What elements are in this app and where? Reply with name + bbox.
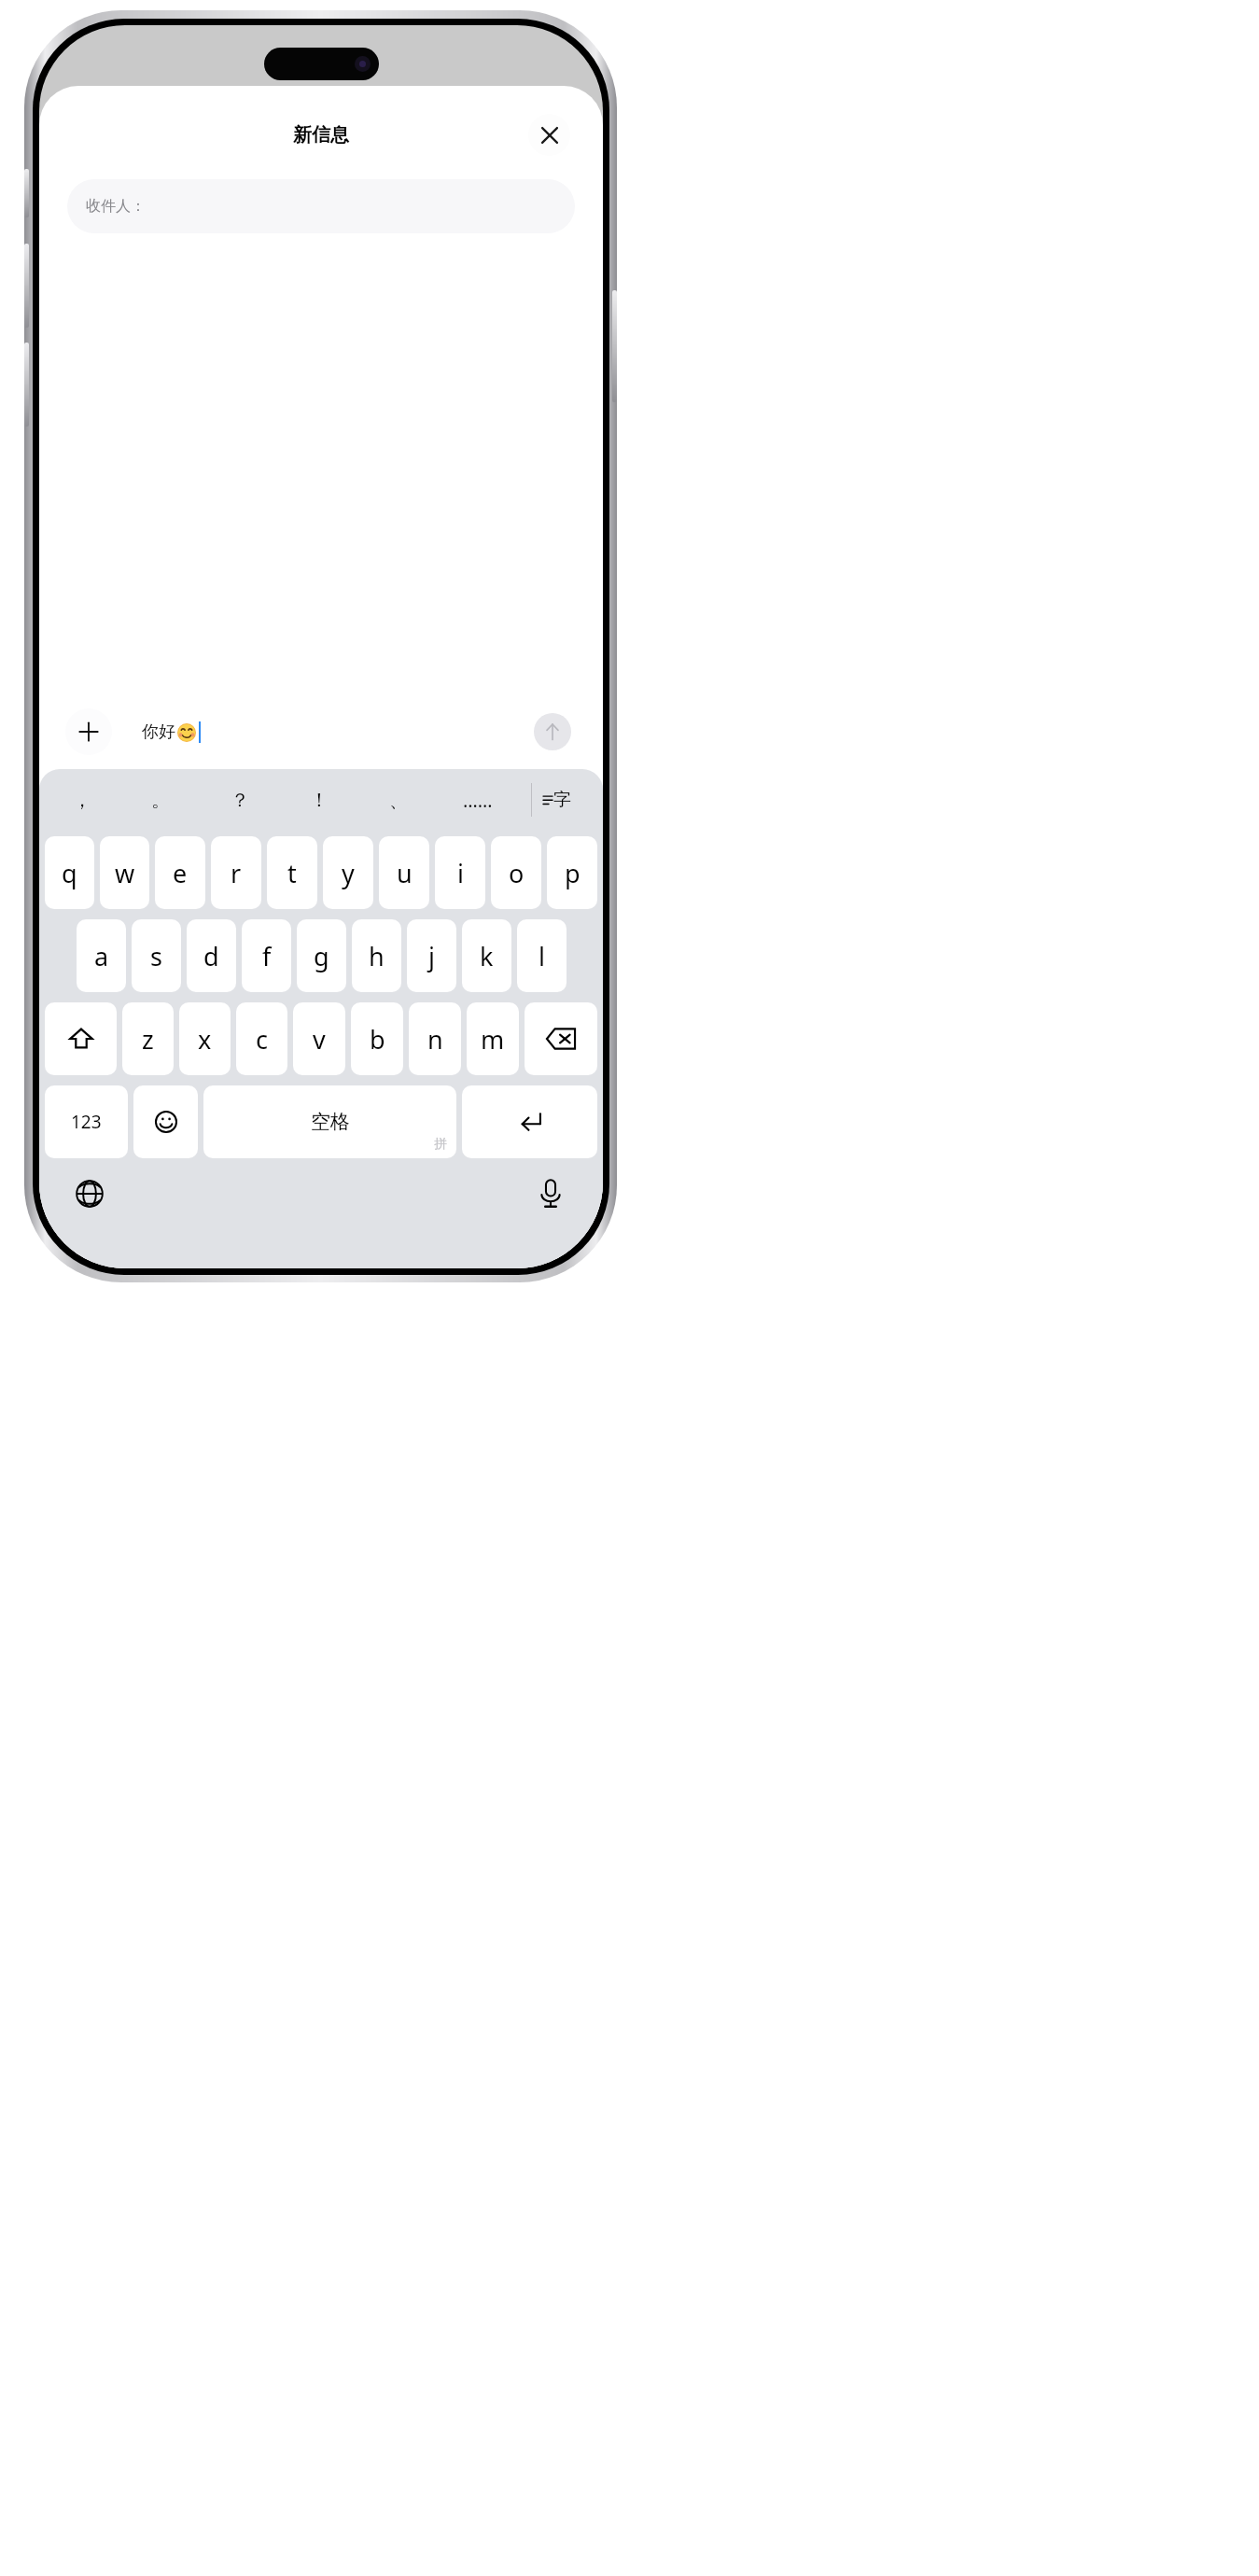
button[interactable]: 。 xyxy=(121,769,200,831)
button[interactable]: x xyxy=(179,1002,231,1075)
button[interactable]: 、 xyxy=(358,769,438,831)
staticText: 拼 xyxy=(434,1136,447,1153)
button[interactable]: y xyxy=(323,836,373,909)
button[interactable]: 关闭 xyxy=(528,114,570,156)
staticText: p xyxy=(565,856,581,890)
staticText: m xyxy=(481,1022,505,1057)
button[interactable]: t xyxy=(267,836,317,909)
staticText: n xyxy=(427,1022,443,1057)
staticText: v xyxy=(313,1022,326,1057)
staticText: a xyxy=(94,939,109,973)
staticText: y xyxy=(342,856,355,890)
button[interactable]: s xyxy=(132,919,181,992)
staticText: 收件人： xyxy=(86,197,146,216)
button[interactable]: j xyxy=(407,919,456,992)
staticText: ， xyxy=(73,789,91,812)
staticText: g xyxy=(314,939,329,973)
button[interactable]: g xyxy=(297,919,346,992)
button[interactable]: l xyxy=(517,919,567,992)
staticText: e xyxy=(173,856,188,890)
button[interactable]: 语音输入 xyxy=(528,1171,573,1216)
button[interactable]: 表情 xyxy=(133,1085,198,1158)
button[interactable]: 发送 xyxy=(534,713,571,750)
staticText: 123 xyxy=(71,1110,102,1134)
staticText: k xyxy=(480,939,494,973)
button[interactable]: e xyxy=(155,836,205,909)
button[interactable]: r xyxy=(211,836,261,909)
staticText: s xyxy=(150,939,162,973)
staticText: …… xyxy=(463,788,493,813)
staticText: x xyxy=(198,1022,212,1057)
staticText: j xyxy=(428,939,435,973)
staticText: w xyxy=(115,856,135,890)
staticText: i xyxy=(457,856,464,890)
staticText: c xyxy=(256,1022,268,1057)
staticText: 你好 xyxy=(142,721,175,743)
staticText: u xyxy=(397,856,413,890)
button[interactable]: ？ xyxy=(200,769,279,831)
button[interactable]: k xyxy=(462,919,511,992)
button[interactable]: 添加 xyxy=(65,708,112,755)
staticText: 新信息 xyxy=(293,123,349,147)
button[interactable]: d xyxy=(187,919,236,992)
button[interactable]: Shift xyxy=(45,1002,117,1075)
button[interactable]: c xyxy=(236,1002,287,1075)
staticText: o xyxy=(509,856,525,890)
staticText: r xyxy=(231,856,242,890)
button[interactable]: 删除 xyxy=(525,1002,597,1075)
button[interactable]: h xyxy=(352,919,401,992)
button[interactable]: i xyxy=(435,836,485,909)
staticText: t xyxy=(287,856,297,890)
staticText: l xyxy=(539,939,545,973)
button[interactable]: u xyxy=(379,836,429,909)
button[interactable]: 123 xyxy=(45,1085,128,1158)
button[interactable]: m xyxy=(467,1002,519,1075)
button[interactable]: 候选字 xyxy=(532,778,582,821)
button[interactable]: 换行 xyxy=(462,1085,597,1158)
button[interactable]: n xyxy=(409,1002,461,1075)
button[interactable]: 你好 xyxy=(123,707,577,756)
button[interactable]: …… xyxy=(438,769,517,831)
button[interactable]: v xyxy=(293,1002,345,1075)
staticText: 。 xyxy=(151,789,170,812)
button[interactable]: p xyxy=(547,836,597,909)
staticText: z xyxy=(142,1022,154,1057)
staticText: ！ xyxy=(310,789,329,812)
staticText: q xyxy=(62,856,77,890)
staticText: d xyxy=(203,939,219,973)
button[interactable]: 切换输入法 xyxy=(67,1171,112,1216)
staticText: f xyxy=(262,939,272,973)
button[interactable]: f xyxy=(242,919,291,992)
staticText: b xyxy=(370,1022,385,1057)
button[interactable]: 收件人： xyxy=(67,179,575,233)
button[interactable]: q xyxy=(45,836,94,909)
button[interactable]: 空格 xyxy=(203,1085,456,1158)
staticText: 字 xyxy=(553,789,571,811)
button[interactable]: z xyxy=(122,1002,174,1075)
staticText: h xyxy=(369,939,385,973)
staticText: 空格 xyxy=(311,1110,350,1134)
button[interactable]: a xyxy=(77,919,126,992)
button[interactable]: w xyxy=(100,836,149,909)
button[interactable]: ， xyxy=(43,769,121,831)
button[interactable]: o xyxy=(491,836,541,909)
staticText: 、 xyxy=(389,789,408,812)
staticText: ？ xyxy=(231,789,249,812)
button[interactable]: b xyxy=(351,1002,403,1075)
button[interactable]: ！ xyxy=(279,769,358,831)
